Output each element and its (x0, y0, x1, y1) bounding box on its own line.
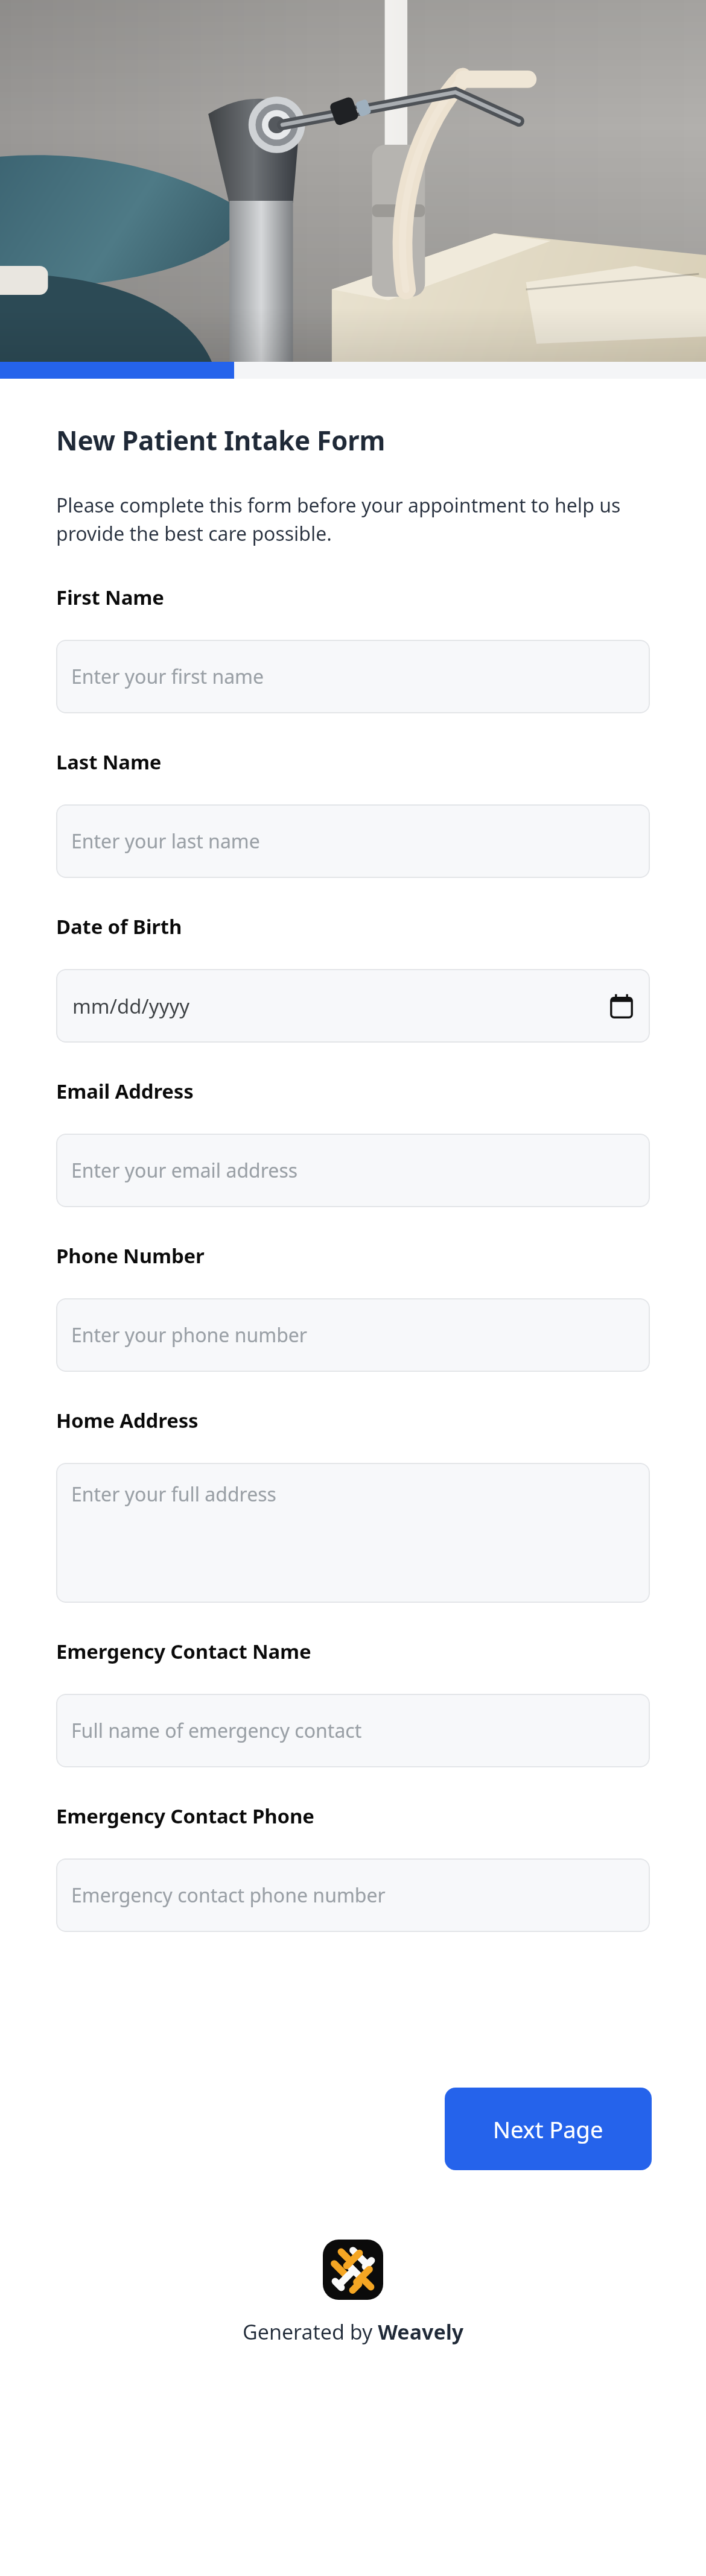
staticText: New Patient Intake Form (56, 422, 386, 458)
button[interactable]: Enter your phone number (56, 1298, 650, 1372)
button[interactable]: Enter your first name (56, 640, 650, 713)
staticText: mm/dd/yyyy (72, 993, 190, 1020)
staticText: Enter your full address (71, 1481, 276, 1507)
staticText: Enter your email address (71, 1157, 298, 1184)
button[interactable]: Next Page (445, 2088, 652, 2170)
staticText: First Name (56, 584, 164, 611)
other: Open calendar picker (609, 994, 634, 1018)
staticText: Phone Number (56, 1242, 205, 1269)
staticText: Date of Birth (56, 913, 182, 940)
staticText: Next Page (493, 2114, 603, 2145)
staticText: Last Name (56, 748, 162, 775)
staticText: Enter your first name (71, 663, 264, 690)
button[interactable]: Full name of emergency contact (56, 1694, 650, 1767)
staticText: Enter your phone number (71, 1322, 308, 1348)
staticText: Please complete this form before your ap… (56, 492, 650, 546)
staticText: Full name of emergency contact (71, 1717, 362, 1744)
button[interactable]: mm/dd/yyyy (56, 969, 650, 1043)
button[interactable]: Enter your last name (56, 804, 650, 878)
button[interactable]: Enter your email address (56, 1134, 650, 1207)
staticText: Emergency Contact Name (56, 1638, 311, 1665)
staticText: Enter your last name (71, 828, 260, 854)
staticText: Generated by Weavely (243, 2318, 464, 2346)
button[interactable]: Emergency contact phone number (56, 1858, 650, 1932)
button[interactable]: Enter your full address (56, 1463, 650, 1603)
staticText: Home Address (56, 1407, 199, 1434)
other: Dental office photo (0, 0, 706, 362)
staticText: Email Address (56, 1078, 194, 1105)
staticText: Emergency contact phone number (71, 1882, 386, 1908)
staticText: Emergency Contact Phone (56, 1802, 314, 1829)
button[interactable]: Weavely logo (323, 2240, 383, 2300)
